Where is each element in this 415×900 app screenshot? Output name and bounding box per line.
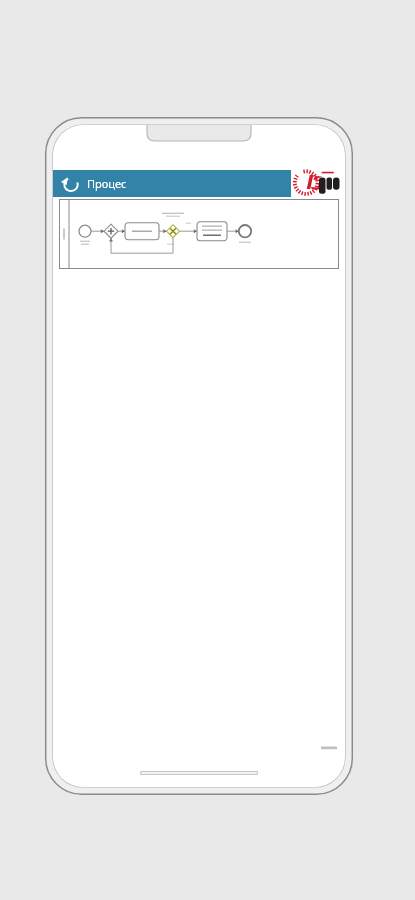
button[interactable]	[59, 199, 339, 269]
button[interactable]: Back	[59, 172, 83, 196]
staticText: Процес	[87, 176, 127, 191]
